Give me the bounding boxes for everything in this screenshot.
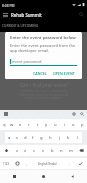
staticText: t (37, 122, 39, 128)
staticText: i (64, 122, 66, 128)
button[interactable]: i (60, 119, 69, 130)
staticText: a (8, 135, 11, 141)
button[interactable]: d (21, 132, 29, 143)
staticText: English (India) (38, 162, 57, 166)
button[interactable]: , (22, 158, 30, 169)
staticText: n (60, 148, 63, 154)
button[interactable]: m (66, 145, 75, 156)
staticText: Enter the event password from the app de… (10, 43, 77, 53)
button[interactable]: Emoji (13, 158, 22, 169)
button[interactable]: x (21, 145, 30, 156)
button[interactable]: k (64, 132, 73, 143)
staticText: Rehab Summit (11, 12, 42, 18)
staticText: z (16, 148, 18, 154)
staticText: b (51, 148, 54, 154)
button[interactable]: z (12, 145, 21, 156)
button[interactable]: CANCEL (31, 70, 49, 77)
staticText: , (26, 161, 27, 166)
staticText: v (42, 148, 45, 154)
button[interactable]: OPEN EVENT (51, 70, 77, 77)
staticText: j (59, 135, 61, 141)
staticText: m (69, 148, 73, 154)
staticText: s (16, 135, 19, 141)
button[interactable]: Recent apps (0, 170, 29, 183)
staticText: p (81, 122, 84, 128)
button[interactable]: Settings (72, 112, 76, 116)
staticText: Can't find your event? (20, 82, 68, 88)
button[interactable]: Back (58, 170, 87, 183)
button[interactable]: j (55, 132, 64, 143)
button[interactable]: CURRENT & UPCOMING (0, 20, 39, 32)
staticText: r (28, 122, 30, 128)
staticText: e (19, 122, 22, 128)
staticText: Enter the event password below (10, 34, 76, 40)
button[interactable]: p (78, 119, 87, 130)
button[interactable]: w (8, 119, 16, 130)
button[interactable]: l (73, 132, 82, 143)
staticText: y (45, 122, 48, 128)
staticText: l (77, 135, 79, 141)
button[interactable]: g (37, 132, 46, 143)
button[interactable]: e (16, 119, 24, 130)
button[interactable]: y (42, 119, 51, 130)
staticText: c (33, 148, 36, 154)
button[interactable]: Backspace (75, 145, 87, 156)
button[interactable]: Home (29, 170, 58, 183)
button[interactable]: b (48, 145, 57, 156)
staticText: k (67, 135, 70, 141)
staticText: h (49, 135, 52, 141)
button[interactable]: Shift (0, 145, 12, 156)
button[interactable]: Search (80, 112, 84, 116)
staticText: x (24, 148, 27, 154)
button[interactable]: t (33, 119, 42, 130)
button[interactable]: Enter (73, 158, 87, 169)
button[interactable]: n (57, 145, 66, 156)
button[interactable]: Search (76, 9, 87, 20)
button[interactable]: c (30, 145, 39, 156)
staticText: f (32, 135, 34, 141)
button[interactable]: u (51, 119, 60, 130)
button[interactable]: ?123 (0, 158, 13, 169)
button[interactable]: f (29, 132, 37, 143)
staticText: ?123 (3, 162, 10, 166)
staticText: CURRENT & UPCOMING (2, 24, 39, 28)
button[interactable]: Open navigation menu (0, 9, 11, 20)
staticText: . (69, 161, 70, 166)
staticText: event password (12, 59, 42, 64)
staticText: o (72, 122, 75, 128)
staticText: d (24, 135, 27, 141)
staticText: CANCEL (33, 71, 47, 76)
staticText: u (54, 122, 57, 128)
button[interactable]: a (5, 132, 13, 143)
button[interactable]: q (0, 119, 8, 130)
button[interactable]: r (24, 119, 33, 130)
staticText: g (40, 135, 43, 141)
button[interactable]: o (69, 119, 78, 130)
button[interactable]: English (India) (30, 158, 65, 169)
staticText: OPEN EVENT (53, 71, 75, 76)
staticText: q (3, 122, 6, 128)
button[interactable]: v (39, 145, 48, 156)
staticText: 8:08 PM (2, 3, 15, 7)
button[interactable]: h (46, 132, 55, 143)
button[interactable]: s (13, 132, 21, 143)
staticText: w (10, 122, 14, 128)
